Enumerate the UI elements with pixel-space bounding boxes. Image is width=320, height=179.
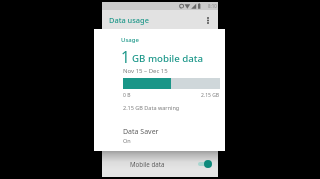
- staticText: 1: [121, 46, 130, 67]
- staticText: On: [123, 137, 131, 144]
- staticText: Mobile data: [130, 160, 165, 168]
- button[interactable]: Mobile data: [102, 151, 218, 177]
- staticText: 2.15 GB: [201, 92, 220, 99]
- staticText: Usage: [121, 36, 139, 44]
- staticText: Data usage: [109, 15, 149, 25]
- staticText: Nov 15 – Dec 15: [123, 67, 168, 75]
- staticText: 8:10: [208, 3, 217, 9]
- staticText: 2.15 GB Data warning: [123, 104, 180, 111]
- staticText: GB mobile data: [132, 52, 204, 65]
- staticText: Data Saver: [123, 127, 159, 137]
- staticText: 0 B: [123, 92, 131, 99]
- button[interactable]: More options: [202, 15, 213, 26]
